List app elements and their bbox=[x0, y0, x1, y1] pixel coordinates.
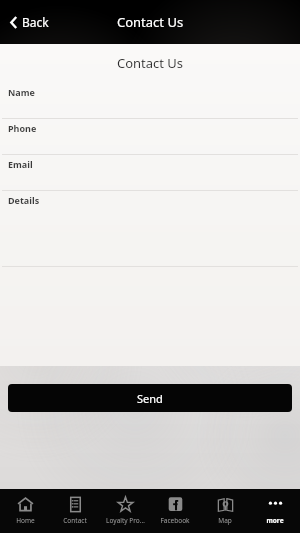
staticText: Contact Us bbox=[0, 54, 300, 72]
staticText: Home bbox=[16, 516, 35, 525]
button[interactable]: Phone bbox=[0, 119, 300, 155]
staticText: Loyalty Pro… bbox=[106, 516, 145, 525]
button[interactable]: Name bbox=[0, 83, 300, 119]
staticText: Details bbox=[8, 194, 40, 206]
staticText: Name bbox=[8, 86, 35, 98]
button[interactable]: more bbox=[250, 489, 300, 533]
button[interactable]: Details bbox=[0, 191, 300, 267]
staticText: Map bbox=[218, 516, 232, 525]
staticText: Contact bbox=[63, 516, 87, 525]
button[interactable]: Loyalty Pro… bbox=[100, 489, 150, 533]
staticText: Phone bbox=[8, 122, 37, 134]
staticText: more bbox=[266, 516, 284, 525]
staticText: Email bbox=[8, 158, 33, 170]
button[interactable]: Email bbox=[0, 155, 300, 191]
staticText: Send bbox=[137, 391, 163, 406]
staticText: Facebook bbox=[160, 516, 190, 525]
button[interactable]: Home bbox=[0, 489, 50, 533]
button[interactable]: Contact bbox=[50, 489, 100, 533]
button[interactable]: Send bbox=[8, 384, 292, 412]
staticText: Back bbox=[22, 14, 49, 30]
button[interactable]: Back bbox=[6, 10, 53, 34]
button[interactable]: Map bbox=[200, 489, 250, 533]
button[interactable]: Facebook bbox=[150, 489, 200, 533]
staticText: Contact Us bbox=[117, 13, 184, 31]
